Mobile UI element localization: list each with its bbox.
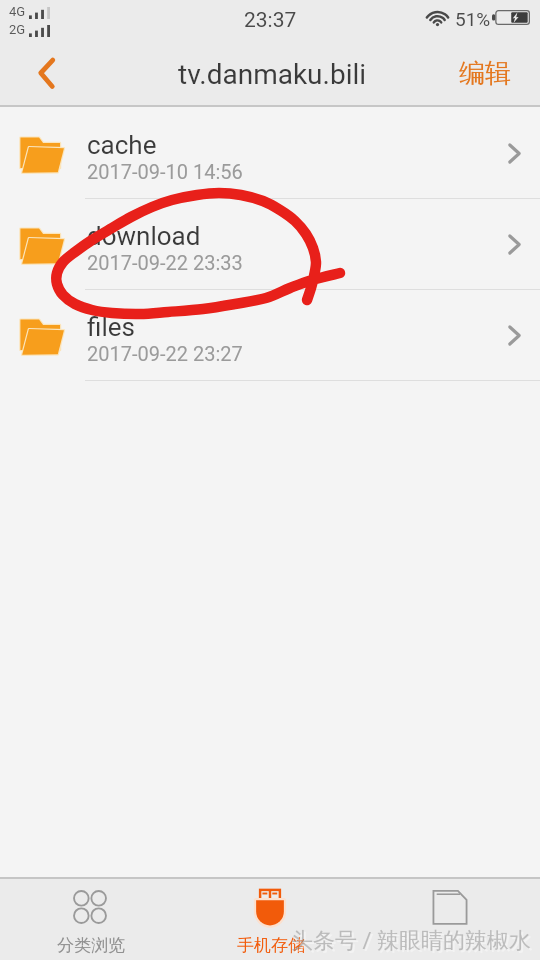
button[interactable]: 编辑 bbox=[443, 44, 525, 107]
staticText: tv.danmaku.bili bbox=[178, 58, 367, 91]
button[interactable]: download bbox=[0, 199, 540, 290]
staticText: 23:37 bbox=[244, 8, 297, 33]
staticText: 2017-09-22 23:27 bbox=[87, 342, 243, 365]
staticText: 2017-09-22 23:33 bbox=[87, 251, 243, 274]
button[interactable]: files bbox=[0, 290, 540, 381]
button[interactable]: 分类浏览 bbox=[28, 879, 152, 960]
button[interactable]: cache bbox=[0, 108, 540, 199]
staticText: cache bbox=[87, 130, 157, 160]
staticText: 分类浏览 bbox=[57, 935, 125, 956]
staticText: 头条号 / 辣眼睛的辣椒水 bbox=[291, 927, 531, 955]
staticText: 2G bbox=[9, 22, 26, 37]
staticText: 4G bbox=[9, 4, 26, 19]
staticText: 编辑 bbox=[459, 57, 511, 90]
button[interactable]: Back bbox=[0, 44, 92, 107]
staticText: 51% bbox=[455, 8, 491, 30]
staticText: 手机存储 bbox=[237, 935, 305, 956]
staticText: 头条号 / 辣眼睛的辣椒水 bbox=[293, 929, 533, 957]
staticText: download bbox=[87, 221, 201, 251]
button[interactable]: 手机存储 bbox=[208, 879, 332, 960]
staticText: files bbox=[87, 312, 135, 342]
button[interactable]: Documents bbox=[388, 879, 512, 960]
staticText: 2017-09-10 14:56 bbox=[87, 160, 243, 183]
